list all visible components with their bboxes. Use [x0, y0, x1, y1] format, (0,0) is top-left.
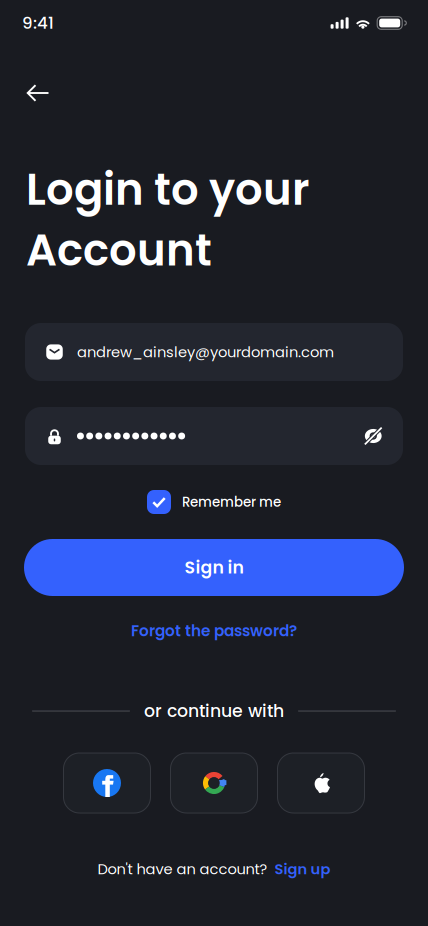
button[interactable]: Sign in: [24, 539, 404, 596]
staticText: Sign up: [274, 859, 330, 879]
staticText: Don't have an account?: [97, 859, 267, 879]
staticText: Remember me: [182, 493, 281, 511]
button[interactable]: Forgot the password?: [121, 614, 307, 648]
button[interactable]: Remember me: [147, 490, 281, 514]
staticText: Login to your Account: [26, 159, 310, 281]
button[interactable]: Show password: [364, 423, 382, 449]
button[interactable]: Continue with Facebook: [63, 753, 150, 813]
staticText: Sign in: [184, 555, 243, 580]
staticText: or continue with: [144, 699, 284, 723]
staticText: Forgot the password?: [131, 620, 297, 642]
button[interactable]: Sign up: [274, 859, 330, 879]
button[interactable]: Back: [16, 71, 60, 115]
staticText: 9:41: [22, 11, 54, 35]
staticText: andrew_ainsley@yourdomain.com: [77, 342, 334, 362]
button[interactable]: Continue with Apple: [277, 753, 364, 813]
button[interactable]: Continue with Google: [170, 753, 257, 813]
